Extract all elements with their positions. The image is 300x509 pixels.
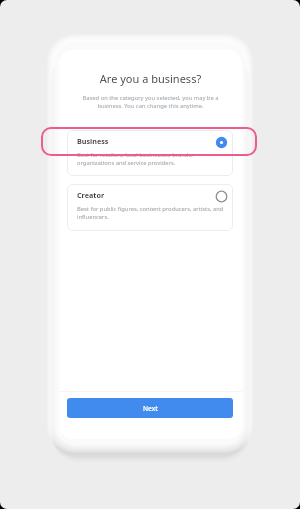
button[interactable]: Selected	[215, 136, 228, 149]
staticText: Next	[143, 404, 158, 413]
button[interactable]: Not selected	[215, 190, 228, 203]
staticText: Best for retailers, local businesses, br…	[77, 151, 224, 166]
staticText: Are you a business?	[59, 71, 242, 86]
staticText: Business	[77, 136, 109, 146]
staticText: Based on the category you selected, you …	[79, 94, 222, 110]
button[interactable]: Next	[67, 398, 233, 418]
button[interactable]: Creator	[67, 184, 233, 231]
staticText: Best for public figures, content produce…	[77, 205, 224, 220]
button[interactable]: Business	[67, 130, 233, 176]
staticText: Creator	[77, 190, 105, 200]
